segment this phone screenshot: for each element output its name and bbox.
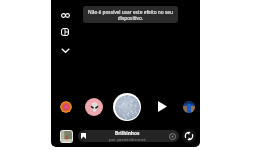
staticText: Brilhinhos: [115, 130, 140, 137]
button[interactable]: Brilhinhos: [78, 130, 179, 142]
button[interactable]: Flip camera: [182, 129, 196, 143]
button[interactable]: More options: [57, 42, 73, 58]
button[interactable]: Effect: [60, 101, 72, 113]
button[interactable]: Loop: [57, 7, 73, 23]
button[interactable]: Next effect: [154, 98, 171, 115]
button[interactable]: Alien effect: [85, 98, 103, 116]
button[interactable]: Effect: [183, 101, 195, 113]
staticText: Não é possível usar este efeito no seu d…: [86, 9, 175, 21]
button[interactable]: Gallery: [61, 131, 72, 142]
button[interactable]: Selected effect: [113, 93, 141, 121]
button[interactable]: Layout: [57, 24, 73, 40]
staticText: por yasmiinbrunet: [109, 137, 146, 142]
